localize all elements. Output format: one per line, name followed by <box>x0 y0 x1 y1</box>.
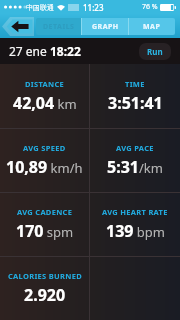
button[interactable]: TIME <box>90 64 180 128</box>
button[interactable]: Back <box>2 17 34 36</box>
staticText: 中国联通 <box>26 3 54 12</box>
button[interactable]: DISTANCE <box>0 64 89 128</box>
button[interactable]: CALORIES BURNED <box>0 257 89 320</box>
button[interactable]: MAP <box>129 18 175 35</box>
staticText: 2.920 <box>24 284 66 306</box>
staticText: DETAILS <box>43 22 75 32</box>
staticText: 76 % <box>142 2 158 12</box>
staticText: 42,04 km <box>13 92 77 114</box>
button[interactable]: GRAPH <box>82 18 128 35</box>
button[interactable]: AVG CADENCE <box>0 193 89 256</box>
staticText: 11:23 <box>83 2 104 13</box>
staticText: 10,89 km/h <box>6 156 83 178</box>
staticText: Run <box>147 46 163 57</box>
staticText: AVG PACE <box>116 143 154 153</box>
staticText: 27 ene 18:22 <box>9 43 81 59</box>
button[interactable]: AVG PACE <box>90 129 180 192</box>
staticText: 3:51:41 <box>108 92 163 114</box>
staticText: MAP <box>143 22 161 32</box>
button[interactable]: DETAILS <box>36 18 81 35</box>
staticText: 139 bpm <box>106 220 165 242</box>
staticText: DISTANCE <box>25 79 65 89</box>
button[interactable]: AVG HEART RATE <box>90 193 180 256</box>
staticText: TIME <box>125 79 145 89</box>
button[interactable]: Run <box>139 43 171 60</box>
staticText: AVG CADENCE <box>17 207 73 217</box>
staticText: GRAPH <box>92 22 119 32</box>
staticText: AVG HEART RATE <box>102 207 168 217</box>
staticText: CALORIES BURNED <box>8 271 82 281</box>
staticText: 5:31/km <box>107 156 163 178</box>
staticText: AVG SPEED <box>23 143 66 153</box>
staticText: 170 spm <box>16 220 74 242</box>
button[interactable]: AVG SPEED <box>0 129 89 192</box>
